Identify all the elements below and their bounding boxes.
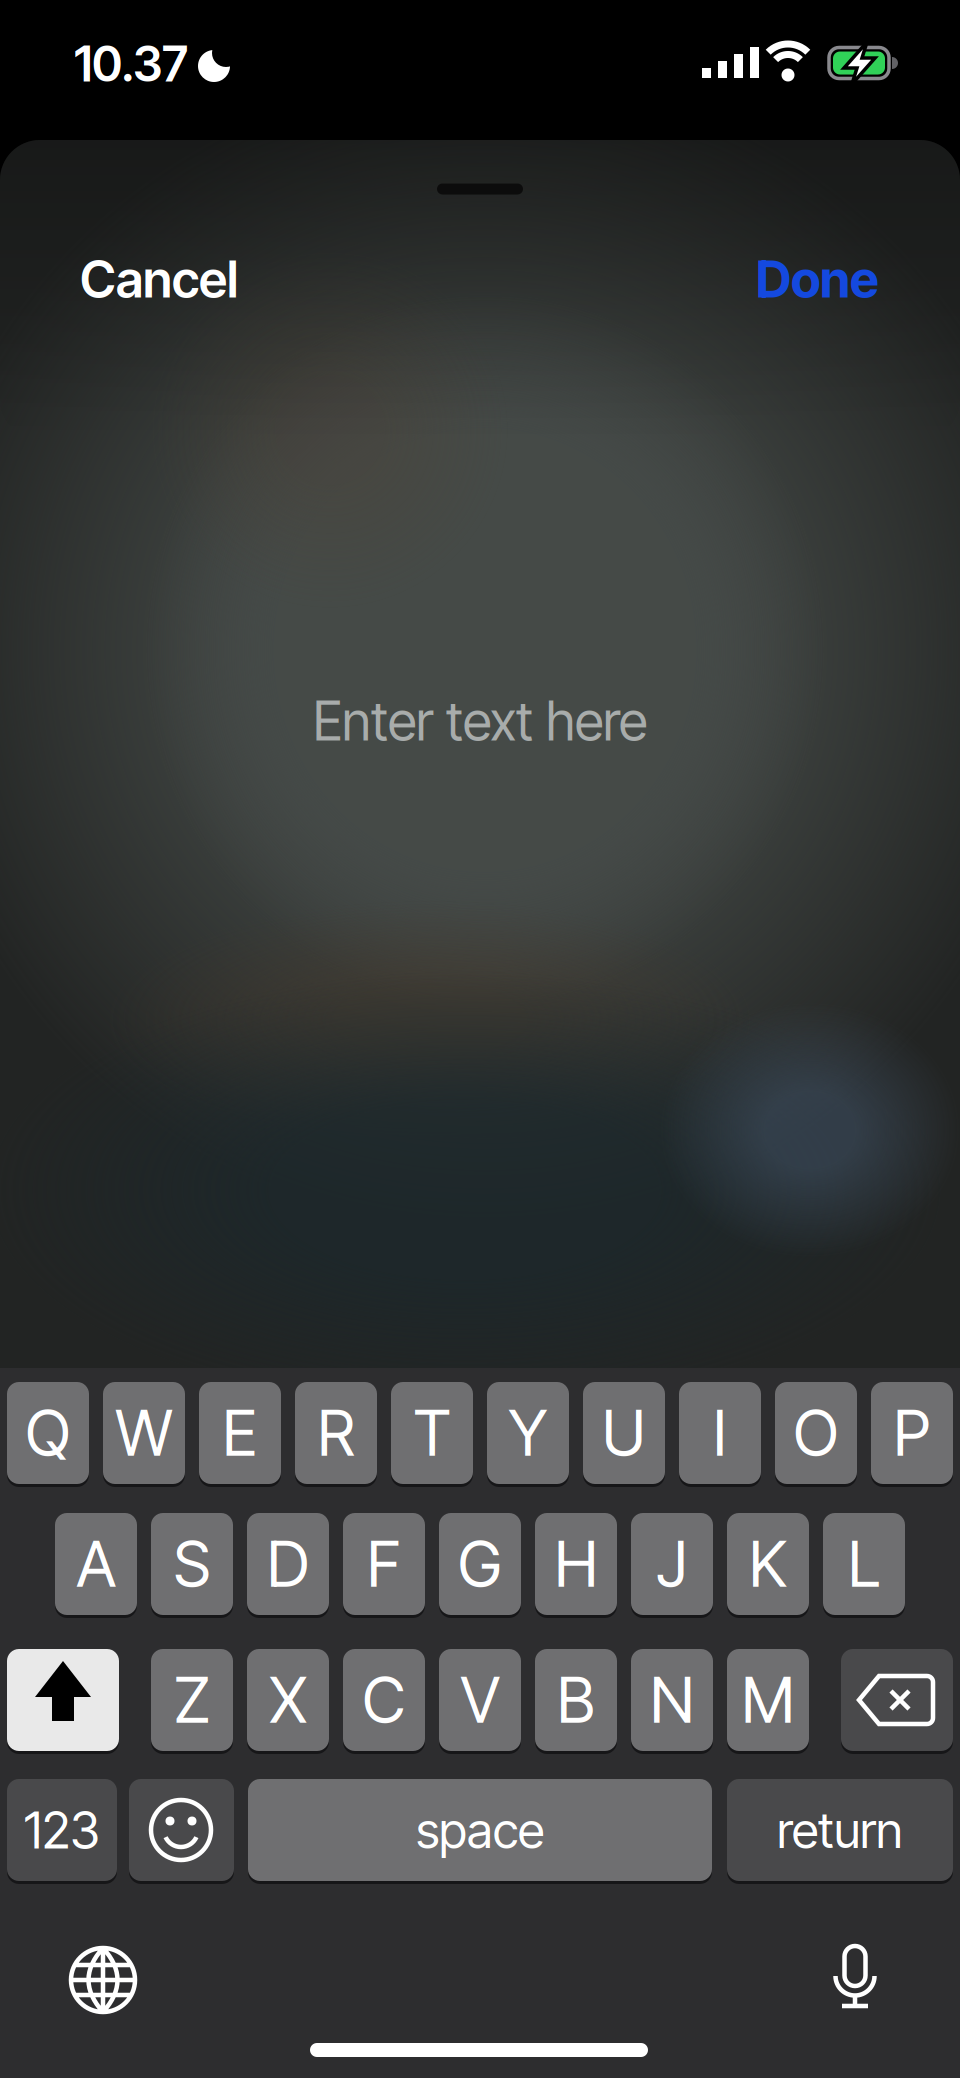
button[interactable]: return — [727, 1777, 953, 1883]
staticText: Cancel — [80, 248, 238, 310]
staticText: A — [76, 1526, 115, 1602]
button[interactable]: N — [631, 1647, 713, 1753]
button[interactable]: V — [439, 1647, 521, 1753]
button[interactable]: U — [583, 1380, 665, 1486]
staticText: S — [173, 1526, 210, 1602]
button[interactable]: Next keyboard — [61, 1938, 145, 2022]
button[interactable]: S — [151, 1511, 233, 1617]
button[interactable]: Q — [7, 1380, 89, 1486]
staticText: T — [413, 1395, 450, 1471]
button[interactable]: Y — [487, 1380, 569, 1486]
button[interactable]: Delete — [841, 1647, 953, 1753]
staticText: 10.37 — [74, 35, 188, 93]
staticText: V — [460, 1662, 499, 1738]
staticText: Y — [508, 1395, 547, 1471]
button[interactable]: Shift — [7, 1647, 119, 1753]
button[interactable]: A — [55, 1511, 137, 1617]
staticText: D — [267, 1526, 309, 1602]
staticText: Done — [756, 248, 879, 310]
staticText: M — [741, 1662, 794, 1738]
button[interactable]: O — [775, 1380, 857, 1486]
staticText: O — [793, 1395, 838, 1471]
button[interactable]: L — [823, 1511, 905, 1617]
staticText: Q — [25, 1395, 70, 1471]
staticText: L — [848, 1526, 880, 1602]
button[interactable]: 123 — [7, 1777, 117, 1883]
button[interactable]: F — [343, 1511, 425, 1617]
button[interactable]: K — [727, 1511, 809, 1617]
button[interactable]: E — [199, 1380, 281, 1486]
button[interactable]: H — [535, 1511, 617, 1617]
button[interactable]: G — [439, 1511, 521, 1617]
button[interactable]: Dictation — [813, 1935, 897, 2019]
staticText: Z — [174, 1662, 210, 1738]
button[interactable]: B — [535, 1647, 617, 1753]
staticText: G — [458, 1526, 502, 1602]
button[interactable]: X — [247, 1647, 329, 1753]
staticText: R — [317, 1395, 354, 1471]
staticText: space — [416, 1800, 544, 1860]
button[interactable]: C — [343, 1647, 425, 1753]
staticText: F — [367, 1526, 401, 1602]
button[interactable]: R — [295, 1380, 377, 1486]
staticText: H — [554, 1526, 597, 1602]
staticText: P — [893, 1395, 930, 1471]
staticText: N — [650, 1662, 694, 1738]
staticText: I — [713, 1395, 727, 1471]
staticText: W — [115, 1395, 172, 1471]
staticText: U — [602, 1395, 646, 1471]
button[interactable]: Z — [151, 1647, 233, 1753]
staticText: 123 — [24, 1799, 100, 1861]
staticText: X — [269, 1662, 306, 1738]
button[interactable]: space — [248, 1777, 712, 1883]
staticText: K — [749, 1526, 787, 1602]
staticText: C — [362, 1662, 405, 1738]
staticText: Enter text here — [313, 689, 647, 753]
button[interactable]: J — [631, 1511, 713, 1617]
button[interactable]: Cancel — [80, 248, 238, 310]
button[interactable]: T — [391, 1380, 473, 1486]
staticText: return — [777, 1800, 903, 1860]
button[interactable]: W — [103, 1380, 185, 1486]
button[interactable]: P — [871, 1380, 953, 1486]
button[interactable]: Done — [756, 248, 879, 310]
button[interactable]: Emoji — [129, 1777, 234, 1883]
button[interactable]: I — [679, 1380, 761, 1486]
button[interactable]: D — [247, 1511, 329, 1617]
staticText: B — [557, 1662, 595, 1738]
button[interactable]: M — [727, 1647, 809, 1753]
staticText: J — [656, 1526, 687, 1602]
staticText: E — [222, 1395, 257, 1471]
